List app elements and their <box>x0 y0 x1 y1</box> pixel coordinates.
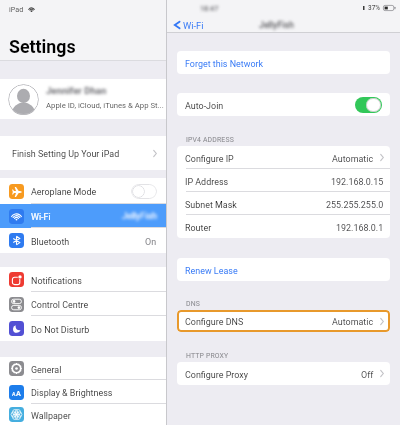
staticText: Aeroplane Mode <box>31 187 97 197</box>
button[interactable]: Back to Wi-Fi <box>173 19 204 31</box>
staticText: Wi-Fi <box>183 20 204 31</box>
button[interactable]: Forget this Network <box>177 51 390 74</box>
staticText: Auto-Join <box>185 101 224 111</box>
staticText: Configure DNS <box>185 317 244 327</box>
button[interactable]: IP Address <box>177 169 390 192</box>
staticText: Jennifer Dhan <box>46 85 107 96</box>
staticText: IPV4 ADDRESS <box>186 136 234 144</box>
button[interactable]: Jennifer Dhan <box>0 79 166 119</box>
staticText: Automatic <box>332 154 374 164</box>
staticText: A <box>16 389 21 397</box>
staticText: JellyFish <box>122 211 157 221</box>
button[interactable]: A <box>0 380 166 404</box>
staticText: 192.168.0.1 <box>336 223 384 233</box>
button[interactable]: Configure IP <box>177 146 390 169</box>
button[interactable]: Configure Proxy <box>177 362 390 385</box>
button[interactable]: Notifications <box>0 267 166 292</box>
button[interactable]: Subnet Mask <box>177 192 390 215</box>
staticText: Display & Brightness <box>31 388 113 398</box>
button[interactable]: Aeroplane Mode off <box>131 184 157 199</box>
staticText: Wallpaper <box>31 411 71 421</box>
staticText: Subnet Mask <box>185 200 237 210</box>
button[interactable]: Bluetooth <box>0 228 166 253</box>
staticText: Forget this Network <box>185 59 264 69</box>
staticText: Apple ID, iCloud, iTunes & App St... <box>46 101 164 110</box>
staticText: Do Not Disturb <box>31 325 90 335</box>
staticText: Notifications <box>31 276 82 286</box>
button[interactable]: Auto-Join on <box>355 97 382 113</box>
button[interactable]: Aeroplane Mode <box>0 178 166 204</box>
staticText: 37% <box>368 4 380 12</box>
staticText: JellyFish <box>259 20 294 30</box>
staticText: 18:47 <box>200 4 219 12</box>
button[interactable]: Renew Lease <box>177 258 390 281</box>
staticText: iPad <box>9 5 24 13</box>
staticText: 192.168.0.15 <box>331 177 384 187</box>
staticText: Finish Setting Up Your iPad <box>12 149 120 159</box>
staticText: DNS <box>186 300 200 308</box>
button[interactable]: Router <box>177 215 390 238</box>
button[interactable]: Configure DNS <box>177 310 390 332</box>
staticText: Wi-Fi <box>31 212 51 222</box>
staticText: Control Centre <box>31 300 89 310</box>
staticText: IP Address <box>185 177 229 187</box>
staticText: General <box>31 365 62 375</box>
staticText: Configure IP <box>185 154 234 164</box>
button[interactable]: Wi-Fi <box>0 204 166 228</box>
button[interactable]: Finish Setting Up Your iPad <box>0 136 166 170</box>
staticText: On <box>145 237 157 247</box>
staticText: HTTP PROXY <box>186 352 229 360</box>
button[interactable]: Wallpaper <box>0 404 166 425</box>
staticText: Automatic <box>332 317 374 327</box>
staticText: Settings <box>9 36 76 57</box>
button[interactable]: General <box>0 357 166 380</box>
button[interactable]: Auto-Join <box>177 93 390 116</box>
staticText: 255.255.255.0 <box>326 200 384 210</box>
button[interactable]: Control Centre <box>0 292 166 316</box>
button[interactable]: Do Not Disturb <box>0 316 166 341</box>
staticText: Configure Proxy <box>185 370 248 380</box>
staticText: Off <box>361 370 374 380</box>
staticText: Router <box>185 223 212 233</box>
staticText: Bluetooth <box>31 237 70 247</box>
staticText: A <box>12 391 16 397</box>
staticText: Renew Lease <box>185 266 238 276</box>
